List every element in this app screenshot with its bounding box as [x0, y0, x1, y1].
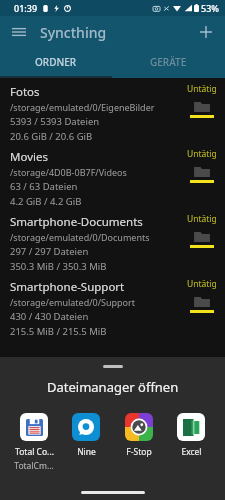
staticText: Nine — [77, 446, 96, 458]
button[interactable]: ORDNER — [0, 48, 112, 76]
staticText: Fotos — [10, 84, 40, 100]
staticText: Smartphone-Documents — [10, 214, 143, 230]
button[interactable]: Nine — [62, 413, 110, 458]
staticText: ORDNER — [35, 55, 77, 69]
staticText: /storage/4D0B-0B7F/Videos — [10, 166, 127, 178]
staticText: 53% — [201, 2, 219, 14]
staticText: 297 / 297 Dateien — [10, 245, 89, 258]
staticText: /storage/emulated/0/EigeneBilder — [10, 101, 155, 113]
staticText: Excel — [181, 446, 202, 458]
staticText: 5393 / 5393 Dateien — [10, 115, 100, 128]
staticText: 350.3 MiB / 350.3 MiB — [10, 260, 107, 273]
button[interactable]: Add folder — [193, 19, 219, 45]
button[interactable]: Smartphone-Support — [0, 273, 225, 338]
staticText: 20.6 GiB / 20.6 GiB — [10, 130, 93, 143]
staticText: /storage/emulated/0/Support — [10, 296, 136, 308]
staticText: TotalCm... — [14, 460, 54, 472]
button[interactable]: Smartphone-Documents — [0, 208, 225, 273]
button[interactable]: Open navigation menu — [6, 19, 32, 45]
staticText: Smartphone-Support — [10, 279, 125, 295]
button[interactable]: Total Co... — [10, 413, 58, 472]
staticText: Dateimanager öffnen — [47, 378, 179, 396]
staticText: Syncthing — [40, 23, 107, 42]
staticText: /storage/emulated/0/Documents — [10, 231, 150, 243]
button[interactable]: Excel — [167, 413, 215, 458]
staticText: 63 / 63 Dateien — [10, 180, 78, 193]
staticText: Untätig — [187, 148, 217, 160]
staticText: 430 / 430 Dateien — [10, 310, 89, 323]
staticText: 215.5 MiB / 215.5 MiB — [10, 325, 107, 338]
staticText: Total Co... — [15, 446, 54, 458]
staticText: F-Stop — [126, 446, 152, 458]
staticText: 01:39 — [14, 2, 38, 14]
staticText: Movies — [10, 149, 48, 165]
staticText: Untätig — [187, 83, 217, 95]
button[interactable]: GERÄTE — [112, 48, 225, 76]
button[interactable]: Fotos — [0, 78, 225, 143]
staticText: Untätig — [187, 278, 217, 290]
button[interactable]: F-Stop — [115, 413, 163, 458]
button[interactable]: Movies — [0, 143, 225, 208]
staticText: GERÄTE — [150, 55, 187, 69]
staticText: Untätig — [187, 213, 217, 225]
staticText: 4.2 GiB / 4.2 GiB — [10, 195, 82, 208]
